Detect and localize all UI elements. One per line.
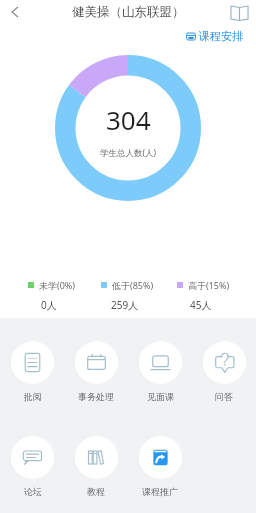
- staticText: 0人: [41, 298, 57, 312]
- staticText: 学生总人数(人): [100, 147, 157, 159]
- staticText: 课程安排: [199, 29, 243, 43]
- staticText: 论坛: [24, 486, 42, 497]
- staticText: 高于(15%): [188, 279, 230, 291]
- button[interactable]: 课程推广: [128, 436, 192, 497]
- staticText: 低于(85%): [112, 279, 154, 291]
- staticText: 见面课: [147, 391, 174, 402]
- staticText: 事务处理: [78, 391, 114, 402]
- button[interactable]: 见面课: [128, 341, 192, 402]
- button[interactable]: 课程安排: [186, 29, 243, 43]
- staticText: 未学(0%): [39, 279, 76, 291]
- button[interactable]: 事务处理: [64, 341, 128, 402]
- staticText: 304: [106, 102, 151, 137]
- button[interactable]: Back: [0, 0, 30, 24]
- staticText: 批阅: [24, 391, 42, 402]
- staticText: 教程: [87, 486, 105, 497]
- staticText: 健美操（山东联盟）: [72, 4, 185, 20]
- button[interactable]: 问答: [192, 341, 256, 402]
- button[interactable]: Course book: [227, 0, 251, 24]
- button[interactable]: 论坛: [1, 436, 64, 497]
- button[interactable]: 教程: [64, 436, 128, 497]
- staticText: 问答: [215, 391, 233, 402]
- staticText: 259人: [111, 298, 139, 312]
- button[interactable]: 批阅: [1, 341, 64, 402]
- staticText: 课程推广: [142, 486, 178, 497]
- staticText: 45人: [190, 298, 212, 312]
